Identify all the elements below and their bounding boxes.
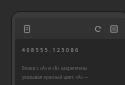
staticText: указывая красный цвет, «А» — (22, 74, 89, 80)
button[interactable]: Refresh (91, 22, 104, 35)
button[interactable]: Document (20, 22, 33, 35)
button[interactable]: More options (107, 22, 120, 35)
staticText: Блоки с «А» и «Б» закреплены (22, 65, 88, 71)
staticText: 4 0 8 5 5 5 . 1 2 5 0 8 6 (22, 47, 79, 54)
